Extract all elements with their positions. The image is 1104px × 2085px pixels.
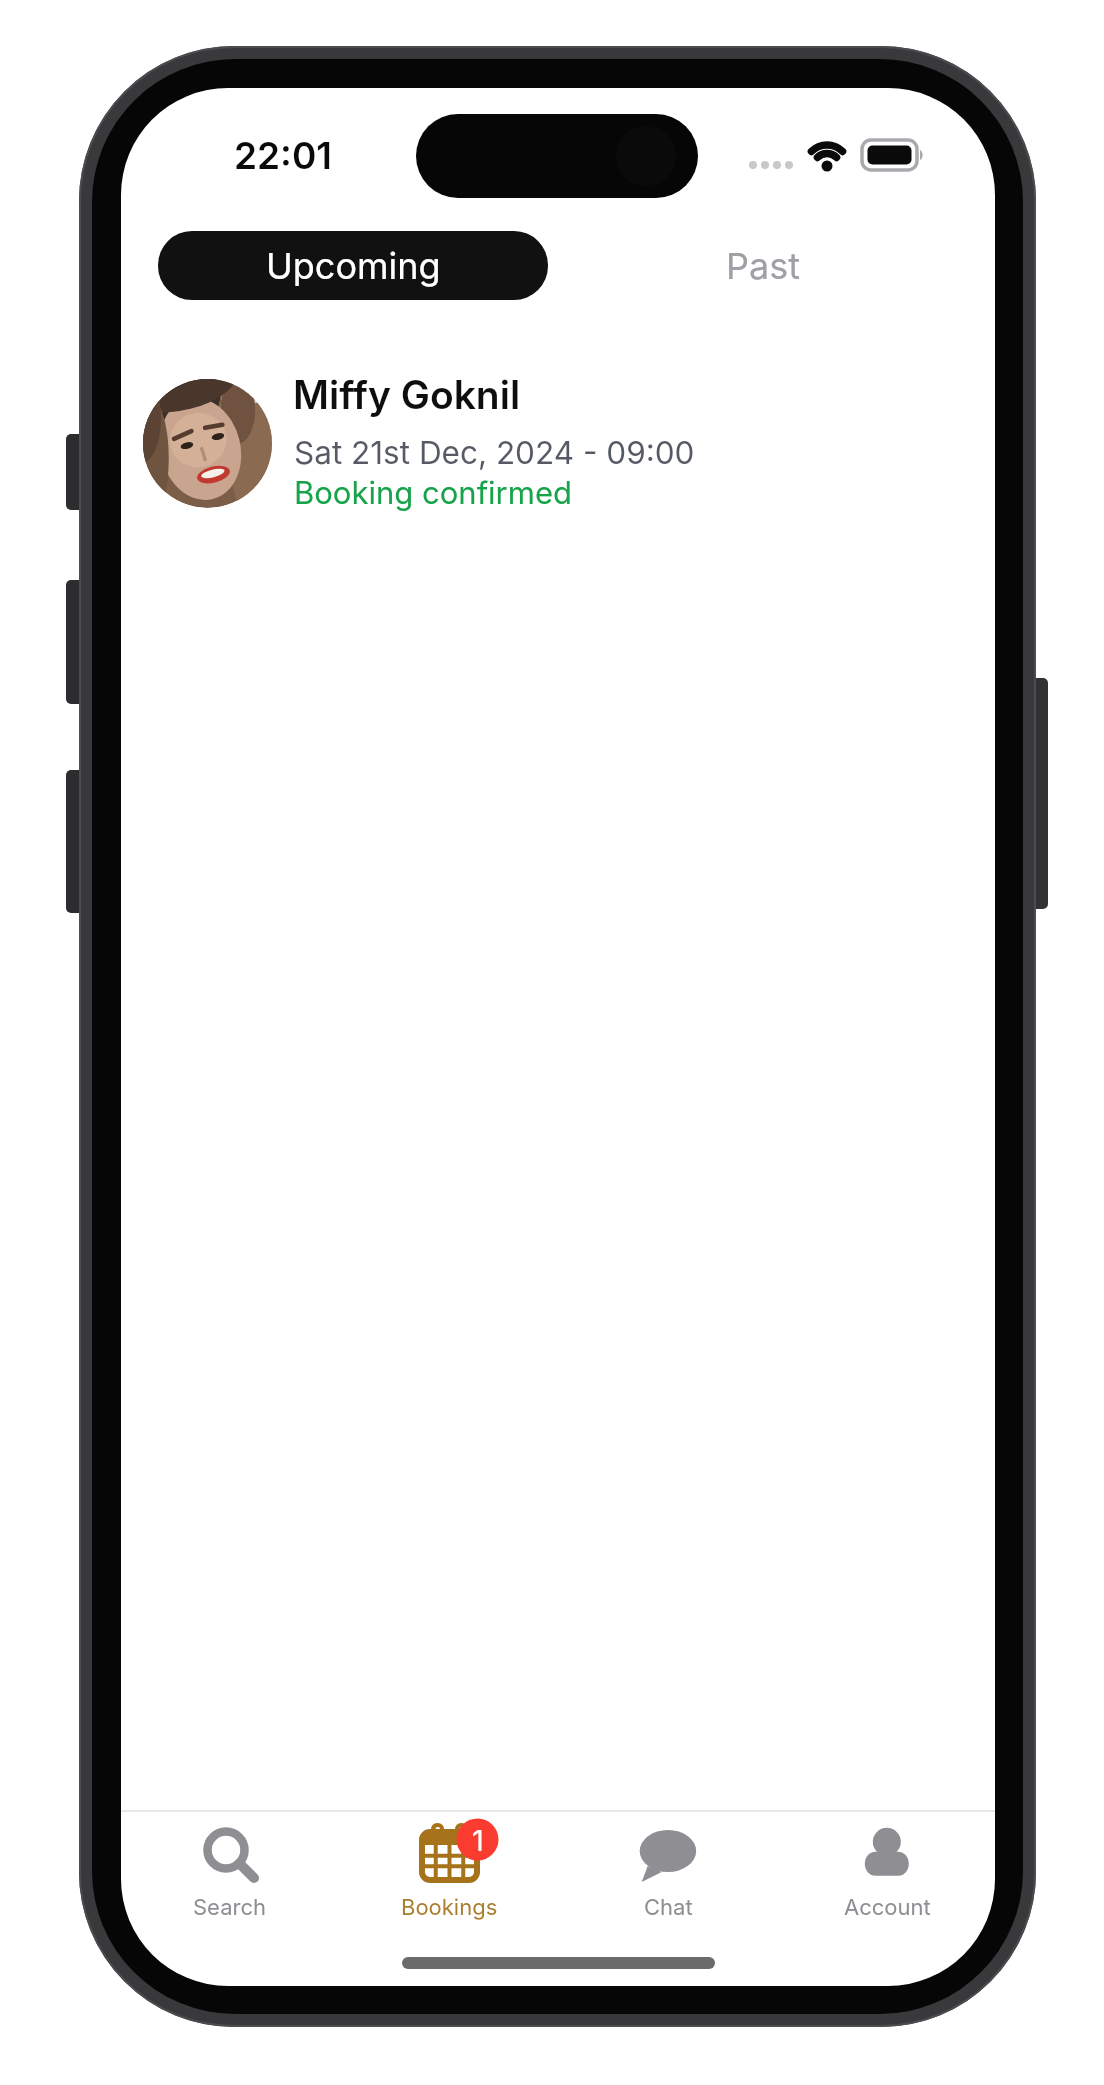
staticText: Account (844, 1894, 931, 1921)
button[interactable]: Past (643, 231, 883, 300)
button[interactable] (139, 1816, 321, 1918)
button[interactable]: Upcoming (158, 231, 548, 300)
staticText: Past (726, 244, 800, 288)
button[interactable] (358, 1816, 540, 1918)
button[interactable] (131, 368, 831, 518)
staticText: Upcoming (266, 244, 441, 288)
staticText: Sat 21st Dec, 2024 - 09:00 (294, 433, 695, 471)
staticText: Chat (644, 1894, 693, 1921)
staticText: Booking confirmed (294, 474, 572, 512)
button[interactable] (796, 1816, 978, 1918)
staticText: Bookings (401, 1894, 498, 1921)
button[interactable] (577, 1816, 759, 1918)
staticText: 22:01 (234, 133, 332, 178)
staticText: Miffy Goknil (293, 371, 521, 418)
staticText: Search (193, 1894, 267, 1921)
staticText: 1 (472, 1823, 484, 1858)
